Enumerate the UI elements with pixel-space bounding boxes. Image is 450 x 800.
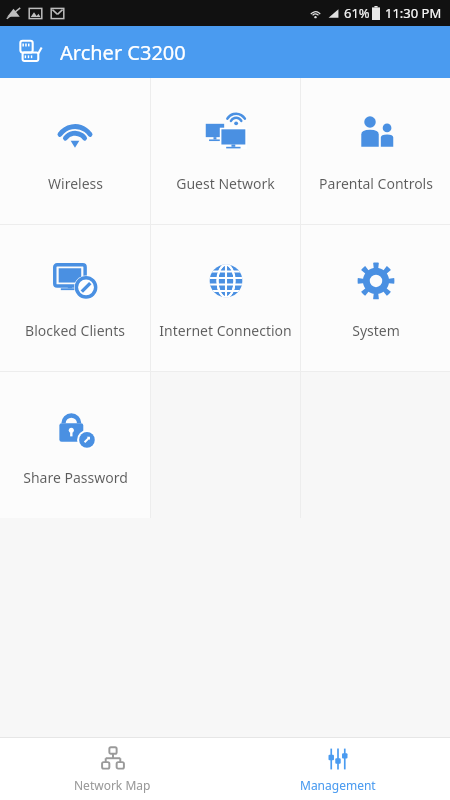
button[interactable]: Network Map	[0, 738, 225, 800]
button[interactable]: Internet Connection	[151, 225, 300, 371]
staticText: Blocked Clients	[25, 321, 125, 340]
staticText: Archer C3200	[60, 39, 186, 66]
button[interactable]: Guest Network	[151, 78, 300, 224]
button[interactable]: Management	[225, 738, 450, 800]
staticText: Parental Controls	[319, 174, 433, 193]
other: Router	[17, 38, 45, 66]
staticText: Internet Connection	[159, 321, 292, 340]
staticText: 11:30 PM	[385, 4, 442, 22]
button[interactable]: Wireless	[0, 78, 150, 224]
staticText: Guest Network	[176, 174, 275, 193]
staticText: Share Password	[23, 468, 128, 487]
button[interactable]: Parental Controls	[301, 78, 450, 224]
button[interactable]: Share Password	[0, 372, 150, 518]
staticText: Management	[300, 777, 376, 793]
button[interactable]: Router	[0, 26, 450, 78]
staticText: Wireless	[48, 174, 103, 193]
button[interactable]: Blocked Clients	[0, 225, 150, 371]
staticText: 61%	[344, 4, 370, 22]
staticText: System	[352, 321, 400, 340]
staticText: Network Map	[74, 777, 151, 793]
button[interactable]: System	[301, 225, 450, 371]
